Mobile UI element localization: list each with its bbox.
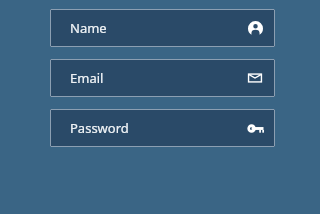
other: Name xyxy=(246,19,264,37)
button[interactable]: Password xyxy=(50,109,275,147)
other: Password xyxy=(246,119,264,137)
button[interactable]: Email xyxy=(50,59,275,97)
staticText: Password xyxy=(70,119,129,137)
staticText: Email xyxy=(70,69,104,87)
staticText: Name xyxy=(70,19,107,37)
button[interactable]: Name xyxy=(50,9,275,47)
other: Email xyxy=(246,69,264,87)
